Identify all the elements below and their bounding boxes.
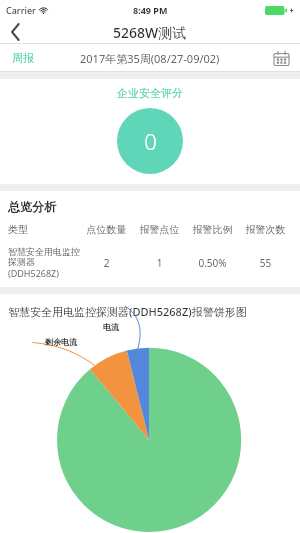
staticText: 总览分析 [8, 199, 56, 214]
staticText: 企业安全评分 [117, 86, 183, 100]
staticText: 智慧安全用电监控探测器(DDH5268Z) [8, 246, 80, 279]
button[interactable]: 0 [117, 108, 183, 174]
button[interactable]: 智慧安全用电监控探测器(DDH5268Z) [8, 246, 292, 279]
staticText: Carrier [6, 4, 36, 16]
staticText: 0 [144, 126, 157, 156]
staticText: 类型 [8, 223, 80, 236]
staticText: 周报 [12, 51, 34, 65]
staticText: 报警点位 [133, 223, 186, 236]
staticText: 8:49 PM [133, 4, 168, 16]
staticText: 报警次数 [239, 223, 292, 236]
staticText: 电流 [103, 322, 119, 332]
button[interactable]: Select date [270, 47, 292, 69]
staticText: 55 [239, 256, 292, 270]
button[interactable]: Back [0, 20, 30, 44]
staticText: 2017年第35周(08/27-09/02) [80, 51, 220, 66]
button[interactable]: 周报 [10, 47, 36, 69]
staticText: 智慧安全用电监控探测器(DDH5268Z)报警饼形图 [8, 304, 247, 319]
staticText: 1 [133, 256, 186, 270]
staticText: 报警比例 [186, 223, 239, 236]
staticText: 剩余电流 [45, 337, 77, 347]
staticText: 2 [80, 256, 133, 270]
staticText: 0.50% [186, 256, 239, 270]
staticText: 5268W测试 [113, 23, 187, 42]
staticText: 点位数量 [80, 223, 133, 236]
